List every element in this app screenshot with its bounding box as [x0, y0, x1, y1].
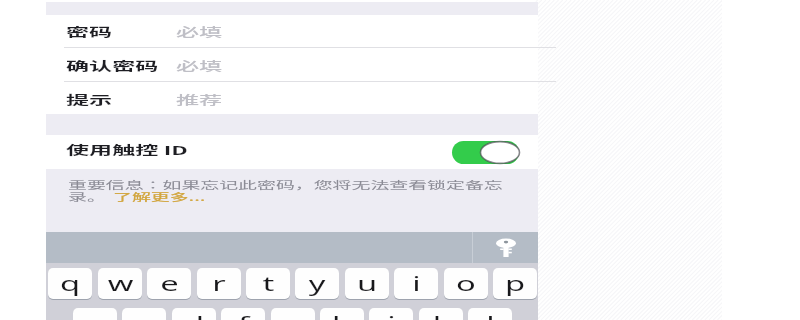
- button[interactable]: i: [394, 268, 438, 299]
- staticText: 确认密码: [66, 57, 158, 74]
- staticText: k: [432, 311, 451, 320]
- staticText: 推荐: [176, 91, 222, 108]
- staticText: h: [332, 311, 352, 320]
- button[interactable]: 使用触控 ID: [46, 135, 538, 169]
- staticText: 重要信息：如果忘记此密码，您将无法查看锁定备忘 录。: [68, 177, 503, 203]
- button[interactable]: Use Touch ID, on: [452, 141, 519, 164]
- staticText: o: [456, 271, 476, 297]
- staticText: w: [108, 271, 133, 297]
- staticText: r: [212, 271, 226, 297]
- button[interactable]: u: [345, 268, 389, 299]
- staticText: e: [160, 271, 179, 297]
- staticText: u: [357, 271, 377, 297]
- staticText: l: [486, 311, 495, 320]
- button[interactable]: j: [369, 308, 413, 320]
- staticText: 使用触控 ID: [66, 141, 188, 158]
- button[interactable]: 了解更多...: [46, 169, 135, 195]
- button[interactable]: f: [221, 308, 265, 320]
- staticText: 必填: [176, 23, 222, 40]
- button[interactable]: h: [320, 308, 364, 320]
- button[interactable]: q: [48, 268, 92, 299]
- staticText: 提示: [66, 91, 112, 108]
- button[interactable]: y: [295, 268, 339, 299]
- button[interactable]: l: [468, 308, 512, 320]
- staticText: t: [262, 271, 274, 297]
- button[interactable]: d: [172, 308, 216, 320]
- staticText: 必填: [176, 57, 222, 74]
- staticText: j: [387, 311, 396, 320]
- staticText: d: [184, 311, 204, 320]
- button[interactable]: a: [73, 308, 117, 320]
- button[interactable]: 提示: [46, 82, 538, 114]
- staticText: f: [237, 311, 249, 320]
- staticText: i: [412, 271, 421, 297]
- button[interactable]: e: [147, 268, 191, 299]
- button[interactable]: g: [271, 308, 315, 320]
- staticText: p: [505, 271, 525, 297]
- button[interactable]: o: [444, 268, 488, 299]
- staticText: 密码: [66, 23, 112, 40]
- staticText: q: [60, 271, 80, 297]
- button[interactable]: r: [197, 268, 241, 299]
- button[interactable]: t: [246, 268, 290, 299]
- button[interactable]: Passwords: [494, 237, 518, 258]
- button[interactable]: p: [493, 268, 537, 299]
- button[interactable]: k: [419, 308, 463, 320]
- button[interactable]: w: [98, 268, 142, 299]
- button[interactable]: 密码: [46, 14, 538, 47]
- button[interactable]: s: [122, 308, 166, 320]
- button[interactable]: 确认密码: [46, 48, 538, 81]
- staticText: y: [308, 271, 326, 297]
